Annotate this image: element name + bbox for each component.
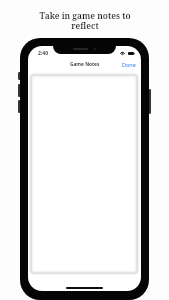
staticText: Done — [122, 61, 136, 67]
staticText: Take in game notes to reflect — [34, 10, 136, 31]
button[interactable]: Done — [116, 58, 141, 70]
staticText: 2:40 — [38, 50, 48, 57]
staticText: Game Notes — [70, 61, 100, 68]
button[interactable] — [28, 72, 140, 276]
